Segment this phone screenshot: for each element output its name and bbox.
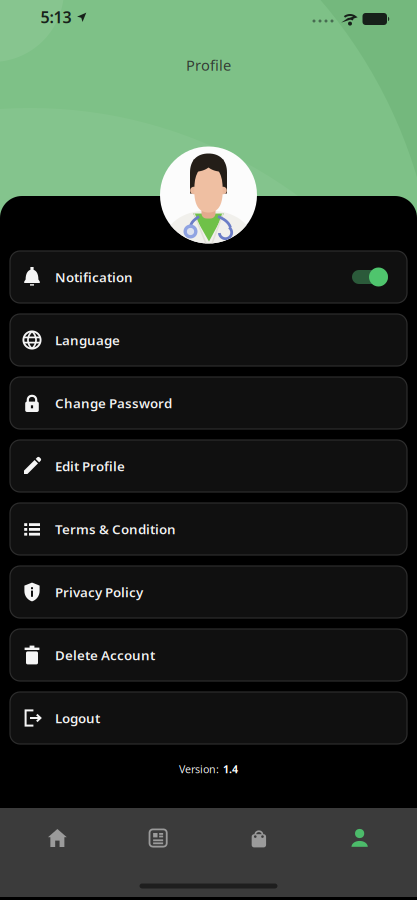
button[interactable]: Change Password [10,377,407,429]
staticText: Logout [55,709,100,727]
staticText: Privacy Policy [55,583,143,601]
staticText: Version: [179,762,219,776]
button[interactable]: Privacy Policy [10,566,407,618]
button[interactable]: News [108,808,209,868]
button[interactable]: Language [10,314,407,366]
button[interactable]: Notification toggle [352,267,388,286]
button[interactable]: Home [7,808,108,868]
staticText: Delete Account [55,646,155,664]
button[interactable]: Profile [309,808,410,868]
staticText: Language [55,331,120,349]
staticText: Edit Profile [55,457,125,475]
button[interactable]: Logout [10,692,407,744]
staticText: 1.4 [223,762,238,776]
button[interactable]: Terms & Condition [10,503,407,555]
button[interactable]: Delete Account [10,629,407,681]
staticText: Notification [55,268,133,286]
button[interactable]: Notification [10,251,407,303]
staticText: Terms & Condition [55,520,176,538]
button[interactable]: Edit Profile [10,440,407,492]
staticText: Change Password [55,394,172,412]
staticText: 5:13 [40,6,71,28]
staticText: Profile [186,55,231,75]
button[interactable]: Shop [208,808,309,868]
